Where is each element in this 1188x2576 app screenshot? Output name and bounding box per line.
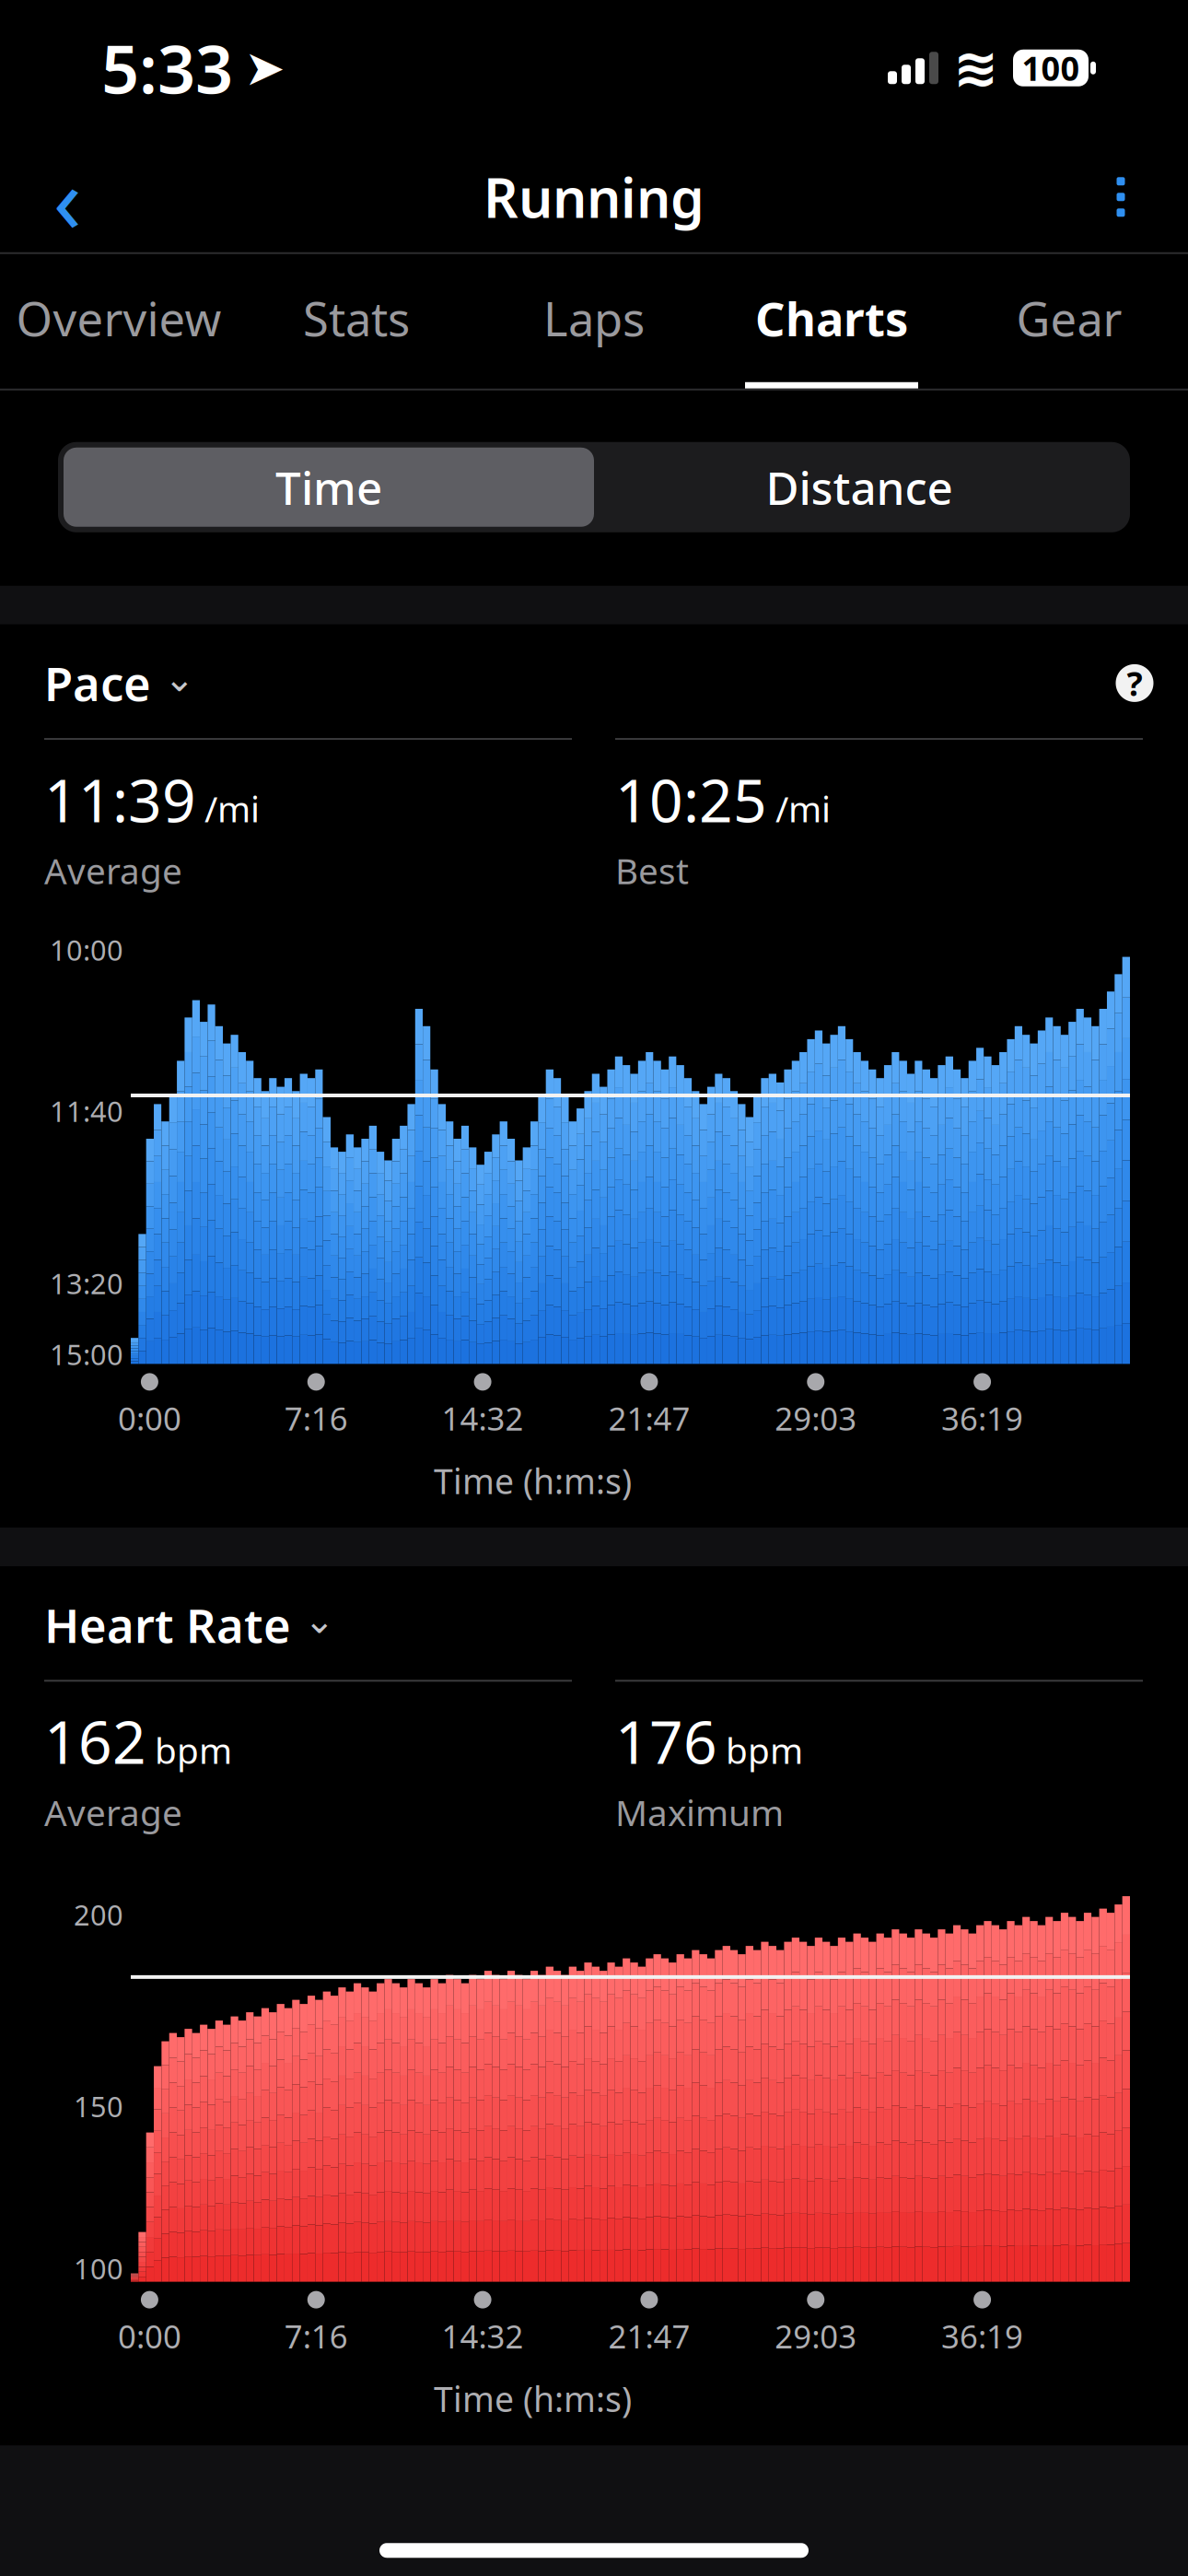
staticText: ? (1127, 661, 1142, 705)
staticText: 10:25 (615, 760, 767, 838)
staticText: 100 (1022, 46, 1080, 90)
button[interactable]: Stats (238, 254, 475, 389)
staticText: Average (44, 847, 182, 894)
button[interactable]: More options (1070, 146, 1171, 248)
staticText: Overview (16, 287, 221, 349)
staticText: 29:03 (775, 1397, 857, 1439)
staticText: Running (483, 161, 705, 233)
staticText: 100 (74, 2250, 123, 2287)
staticText: 21:47 (608, 2315, 690, 2357)
button[interactable]: Pace (44, 652, 195, 714)
staticText: Charts (755, 287, 908, 349)
staticText: 150 (74, 2087, 123, 2125)
button[interactable]: Distance (594, 448, 1124, 527)
button[interactable]: Overview (0, 254, 238, 389)
staticText: 13:20 (50, 1264, 123, 1302)
button[interactable]: Help (1109, 657, 1160, 709)
staticText: ‹ (53, 135, 82, 259)
staticText: Distance (766, 457, 953, 517)
staticText: ≋ (953, 37, 998, 99)
staticText: 36:19 (941, 1397, 1023, 1439)
staticText: Heart Rate (44, 1594, 291, 1656)
staticText: 10:00 (50, 931, 123, 968)
staticText: ➤ (244, 40, 285, 96)
staticText: 7:16 (284, 1397, 348, 1439)
staticText: 0:00 (118, 1397, 181, 1439)
staticText: Time (h:m:s) (434, 2376, 632, 2421)
staticText: 11:40 (50, 1092, 123, 1130)
staticText: 162 (44, 1702, 146, 1780)
staticText: 0:00 (118, 2315, 181, 2357)
staticText: 7:16 (284, 2315, 348, 2357)
button[interactable]: Gear (950, 254, 1188, 389)
button[interactable]: Charts (713, 254, 950, 389)
button[interactable]: Laps (475, 254, 713, 389)
staticText: 176 (615, 1702, 717, 1780)
button[interactable]: Time (64, 448, 594, 527)
button[interactable]: Back (17, 146, 118, 248)
staticText: Pace (44, 652, 151, 714)
button[interactable]: Heart Rate (44, 1594, 335, 1656)
staticText: bpm (155, 1726, 232, 1774)
staticText: 36:19 (941, 2315, 1023, 2357)
staticText: 29:03 (775, 2315, 857, 2357)
staticText: Stats (303, 287, 410, 349)
staticText: Gear (1016, 287, 1122, 349)
staticText: ⌄ (164, 658, 195, 699)
staticText: Average (44, 1789, 182, 1836)
staticText: Maximum (615, 1789, 784, 1836)
staticText: Laps (543, 287, 645, 349)
staticText: 15:00 (50, 1335, 123, 1373)
staticText: 5:33 (101, 24, 233, 112)
staticText: Time (275, 457, 382, 517)
staticText: 14:32 (442, 1397, 524, 1439)
staticText: Time (h:m:s) (434, 1458, 632, 1504)
staticText: /mi (775, 785, 831, 832)
staticText: ⌄ (304, 1599, 335, 1641)
staticText: 11:39 (44, 760, 196, 838)
staticText: 14:32 (442, 2315, 524, 2357)
staticText: /mi (204, 785, 260, 832)
staticText: bpm (726, 1726, 803, 1774)
staticText: 21:47 (608, 1397, 690, 1439)
staticText: Best (615, 847, 689, 894)
staticText: 200 (74, 1896, 123, 1933)
